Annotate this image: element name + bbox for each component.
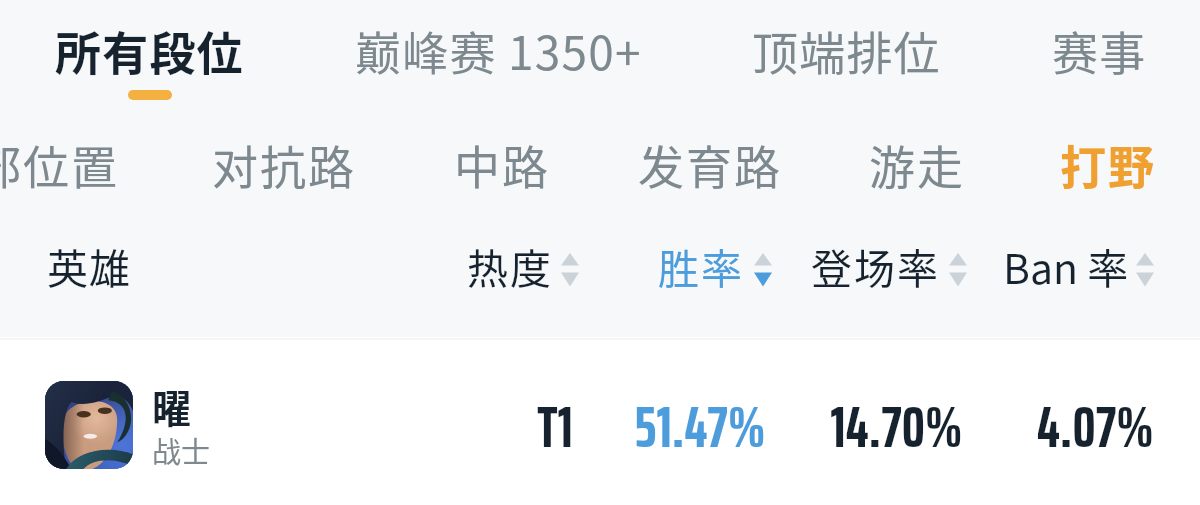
staticText: 热度 [467, 236, 553, 295]
button[interactable]: 赛事 [1052, 0, 1147, 98]
staticText: 登场率 [811, 236, 940, 295]
staticText: 赛事 [1052, 17, 1147, 84]
button[interactable]: 中路 [453, 108, 549, 220]
button[interactable]: 全部位置 [0, 108, 118, 220]
staticText: 14.70% [830, 381, 963, 472]
staticText: 巅峰赛 1350+ [355, 17, 642, 84]
button[interactable]: 游走 [868, 108, 964, 220]
other: 英雄头像 曜 [45, 381, 133, 469]
staticText: 顶端排位 [752, 17, 941, 84]
staticText: 全部位置 [0, 131, 118, 198]
staticText: 英雄 [47, 236, 131, 295]
button[interactable]: 发育路 [637, 108, 781, 220]
staticText: 战士 [152, 429, 211, 471]
staticText: 51.47% [634, 381, 766, 472]
button[interactable]: 对抗路 [211, 108, 355, 220]
staticText: 打野 [1059, 131, 1155, 198]
staticText: 中路 [453, 131, 549, 198]
staticText: 游走 [868, 131, 964, 198]
staticText: 4.07% [1037, 381, 1154, 472]
button[interactable]: 登场率 [793, 215, 985, 315]
button[interactable]: 顶端排位 [752, 0, 941, 98]
staticText: 发育路 [637, 131, 781, 198]
button[interactable]: 巅峰赛 1350+ [355, 0, 642, 98]
button[interactable]: 所有段位 [55, 0, 244, 98]
staticText: Ban 率 [1003, 236, 1129, 295]
staticText: 曜 [152, 378, 192, 434]
staticText: 对抗路 [211, 131, 355, 198]
staticText: 所有段位 [55, 17, 244, 84]
button[interactable]: 打野 [1059, 108, 1155, 220]
button[interactable]: Ban 率 [978, 215, 1178, 315]
staticText: T1 [537, 381, 573, 472]
button[interactable]: 热度 [427, 215, 619, 315]
button[interactable]: 英雄头像 曜 [0, 342, 1200, 505]
staticText: 胜率 [658, 236, 744, 295]
button[interactable]: 胜率 [619, 215, 811, 315]
